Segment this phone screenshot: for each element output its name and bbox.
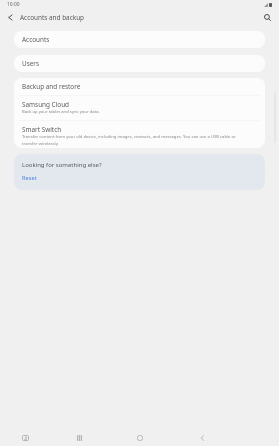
button[interactable]: Users — [14, 55, 265, 72]
button[interactable]: Home — [131, 429, 149, 446]
staticText: Samsung Cloud — [22, 100, 70, 109]
staticText: Accounts and backup — [20, 13, 85, 22]
staticText: Reset — [22, 174, 37, 182]
button[interactable]: Reset — [22, 174, 37, 182]
button[interactable]: Backup and restore — [14, 78, 265, 95]
button[interactable]: Smart Switch — [14, 121, 265, 148]
staticText: Back up your tablet and sync your data. — [22, 109, 100, 115]
staticText: Looking for something else? — [22, 161, 102, 169]
button[interactable]: Back — [193, 429, 211, 446]
staticText: Accounts — [22, 35, 50, 44]
button[interactable]: Navigate up — [0, 10, 21, 25]
staticText: 10:00 — [7, 1, 20, 8]
button[interactable]: Recent apps — [70, 429, 88, 446]
button[interactable]: Accounts — [14, 31, 265, 48]
button[interactable]: Search — [258, 10, 276, 25]
button[interactable]: Show keyboard — [16, 429, 34, 446]
staticText: Users — [22, 59, 40, 68]
button[interactable]: Samsung Cloud — [14, 96, 265, 120]
staticText: Transfer content from your old device, i… — [22, 134, 245, 146]
staticText: Backup and restore — [22, 82, 81, 91]
staticText: Smart Switch — [22, 125, 62, 134]
